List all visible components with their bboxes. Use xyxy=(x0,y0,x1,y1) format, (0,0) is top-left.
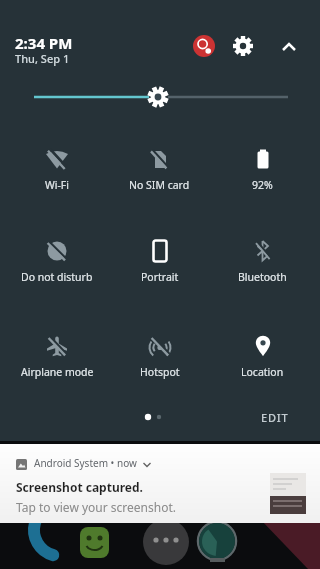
staticText: Screenshot captured. xyxy=(16,479,143,495)
button[interactable]: Bluetooth xyxy=(211,239,314,284)
staticText: No SIM card xyxy=(129,178,190,192)
button[interactable]: Hotspot xyxy=(108,334,211,379)
staticText: Wi-Fi xyxy=(45,178,70,192)
button[interactable]: Airplane mode xyxy=(6,334,108,379)
staticText: 2:34 PM xyxy=(15,33,73,53)
button[interactable] xyxy=(193,35,215,57)
staticText: Portrait xyxy=(141,270,179,284)
button[interactable] xyxy=(233,36,253,56)
button[interactable] xyxy=(280,38,298,56)
staticText: Thu, Sep 1 xyxy=(15,51,70,66)
staticText: Do not disturb xyxy=(21,270,93,284)
staticText: Android System • now xyxy=(34,456,137,470)
button[interactable]: Do not disturb xyxy=(6,239,108,284)
staticText: 92% xyxy=(252,178,273,192)
button[interactable]: No SIM card xyxy=(108,147,211,192)
staticText: Airplane mode xyxy=(21,365,94,379)
button[interactable]: Location xyxy=(211,334,314,379)
staticText: Tap to view your screenshot. xyxy=(16,499,176,515)
staticText: Location xyxy=(241,365,284,379)
button[interactable] xyxy=(0,82,320,112)
staticText: EDIT xyxy=(261,410,289,425)
button[interactable]: EDIT xyxy=(250,404,300,430)
button[interactable]: Portrait xyxy=(108,239,211,284)
button[interactable]: Wi-Fi xyxy=(6,147,108,192)
button[interactable]: 92% xyxy=(211,147,314,192)
staticText: Hotspot xyxy=(140,365,180,379)
button[interactable]: Android System • now xyxy=(0,444,320,523)
staticText: Bluetooth xyxy=(238,270,287,284)
